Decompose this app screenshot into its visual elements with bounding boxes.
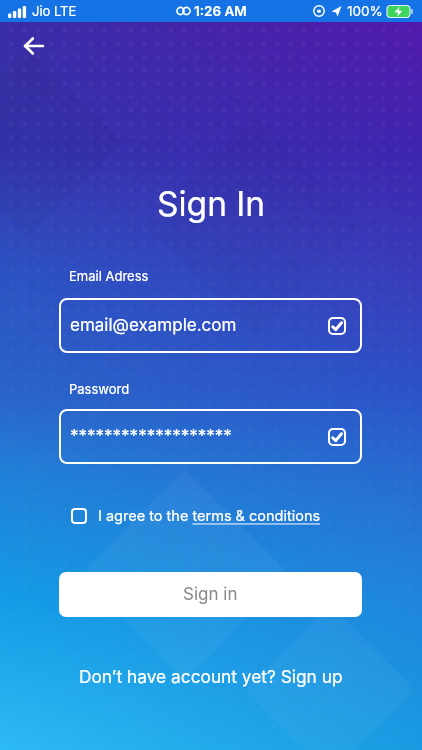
button[interactable]: ******************* xyxy=(59,409,362,464)
button[interactable]: I agree to the terms & conditions xyxy=(98,507,321,525)
button[interactable] xyxy=(328,317,346,335)
button[interactable] xyxy=(328,428,346,446)
button[interactable]: Sign in xyxy=(59,572,362,617)
staticText: Sign In xyxy=(157,184,266,225)
button[interactable]: Don’t have account yet? Sign up xyxy=(79,666,343,687)
staticText: Jio LTE xyxy=(32,3,77,19)
staticText: Password xyxy=(69,381,130,397)
staticText: Sign in xyxy=(183,584,238,605)
staticText: email@example.com xyxy=(70,315,237,336)
staticText: 1:26 AM xyxy=(194,3,247,19)
staticText: 100% xyxy=(347,3,383,19)
button[interactable]: email@example.com xyxy=(59,298,362,353)
staticText: Email Adress xyxy=(69,268,149,284)
button[interactable] xyxy=(21,31,51,61)
staticText: ******************* xyxy=(70,426,232,447)
button[interactable] xyxy=(71,508,87,524)
